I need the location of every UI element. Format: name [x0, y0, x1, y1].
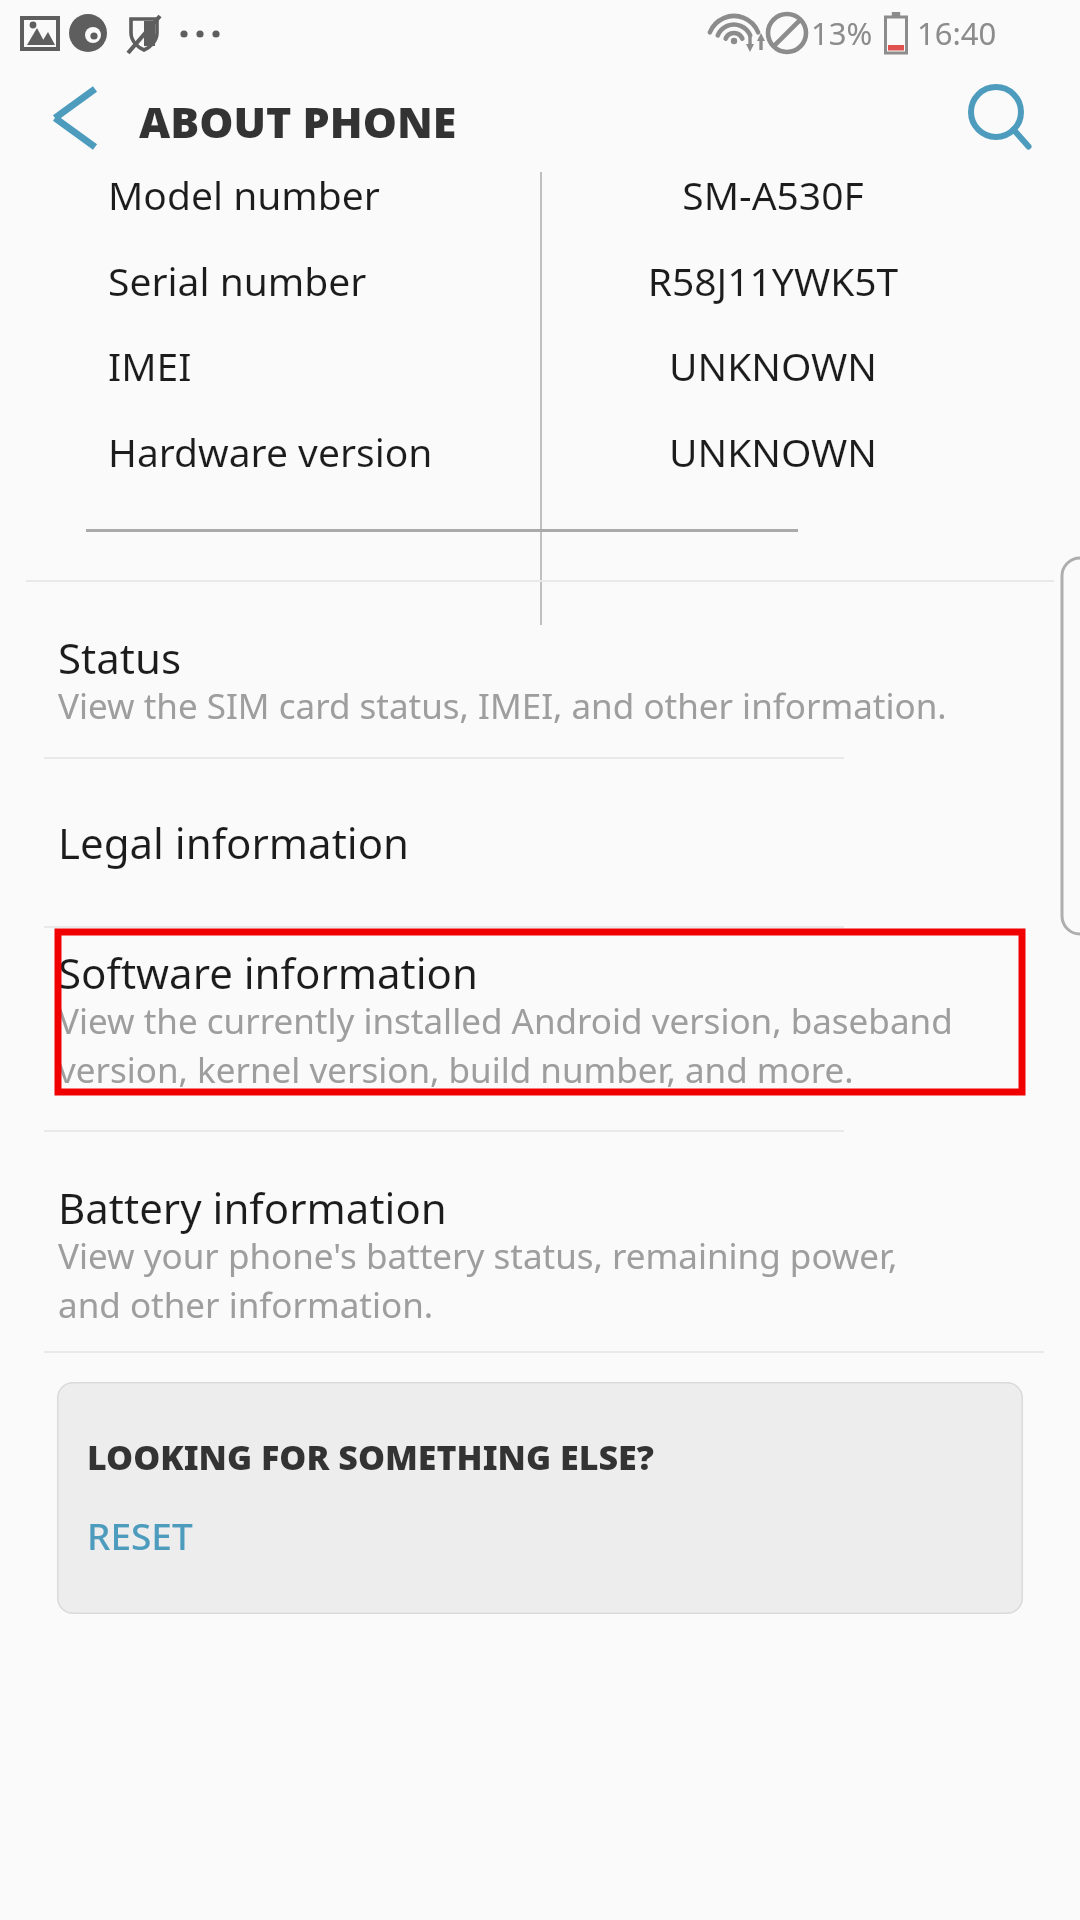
staticText: SM-A530F: [542, 168, 1004, 221]
staticText: Software information: [58, 944, 478, 1001]
staticText: View your phone's battery status, remain…: [58, 1232, 1058, 1328]
staticText: View the currently installed Android ver…: [58, 997, 1058, 1093]
button[interactable]: Software information: [0, 940, 1080, 1158]
button[interactable]: Model number: [0, 151, 1080, 237]
button[interactable]: Search: [955, 75, 1041, 161]
staticText: IMEI: [108, 339, 192, 392]
staticText: UNKNOWN: [542, 339, 1004, 392]
staticText: RESET: [87, 1510, 193, 1560]
button[interactable]: RESET: [71, 1500, 209, 1570]
button[interactable]: IMEI: [0, 322, 1080, 408]
staticText: ABOUT PHONE: [139, 92, 457, 151]
staticText: Status: [58, 629, 182, 686]
staticText: LOOKING FOR SOMETHING ELSE?: [87, 1434, 654, 1480]
staticText: View the SIM card status, IMEI, and othe…: [58, 682, 1058, 730]
button[interactable]: Hardware version: [0, 408, 1080, 494]
staticText: Serial number: [108, 254, 367, 307]
staticText: Hardware version: [108, 425, 433, 478]
staticText: Model number: [108, 168, 380, 221]
button[interactable]: Navigate up: [26, 75, 112, 161]
button[interactable]: Legal information: [0, 758, 1080, 926]
staticText: 13%: [811, 12, 873, 54]
button[interactable]: Battery information: [0, 1131, 1080, 1351]
staticText: 16:40: [917, 12, 997, 54]
button[interactable]: Status: [0, 581, 1080, 757]
staticText: UNKNOWN: [542, 425, 1004, 478]
staticText: R58J11YWK5T: [542, 254, 1004, 307]
staticText: Legal information: [58, 814, 410, 871]
staticText: Battery information: [58, 1179, 447, 1236]
button[interactable]: Serial number: [0, 237, 1080, 323]
